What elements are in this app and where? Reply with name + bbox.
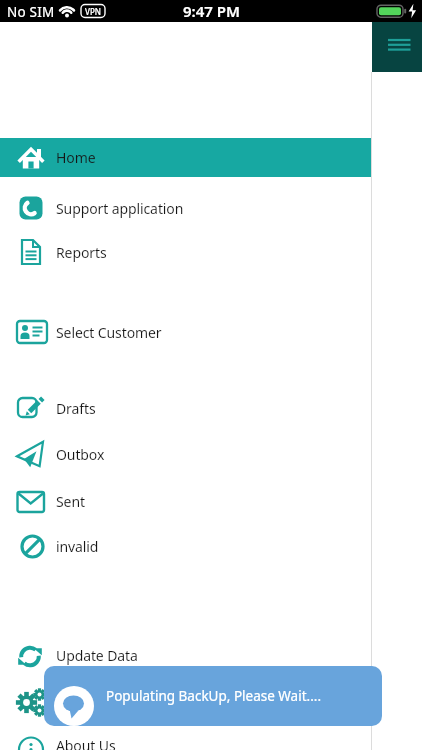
staticText: Support application [56,199,184,218]
button[interactable]: Drafts [0,385,372,431]
button[interactable]: Select Customer [0,309,372,355]
staticText: VPN [85,6,102,17]
button[interactable]: Home [0,138,372,177]
button[interactable]: Populating BackUp, Please Wait.... [44,666,382,726]
staticText: Populating BackUp, Please Wait.... [106,687,322,705]
button[interactable] [0,679,372,725]
button[interactable]: Update Data [0,632,372,678]
staticText: invalid [56,537,99,556]
staticText: Select Customer [56,323,162,342]
button[interactable]: About Us [0,722,372,750]
button[interactable]: invalid [0,523,372,569]
button[interactable]: Reports [0,229,372,275]
staticText: No SIM [7,3,55,21]
button[interactable]: Sent [0,478,372,524]
staticText: Drafts [56,399,96,418]
staticText: Outbox [56,445,105,464]
staticText: Home [56,148,96,167]
staticText: Sent [56,492,85,511]
staticText: Update Data [56,646,138,665]
button[interactable]: Outbox [0,431,372,477]
staticText: Reports [56,243,107,262]
button[interactable] [382,32,416,60]
button[interactable]: Support application [0,185,372,231]
staticText: About Us [56,736,116,750]
staticText: 9:47 PM [183,1,240,21]
